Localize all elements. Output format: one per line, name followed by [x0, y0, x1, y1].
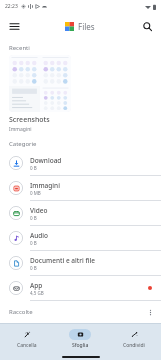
staticText: Cancella — [17, 342, 37, 349]
staticText: Condividi — [123, 342, 145, 349]
button[interactable]: Cerca — [139, 18, 155, 34]
staticText: Raccolte — [9, 308, 33, 316]
staticText: Screenshots — [9, 115, 50, 125]
staticText: Immagini — [9, 126, 32, 133]
button[interactable]: Download — [0, 151, 161, 175]
staticText: 22:23 — [5, 3, 18, 10]
button[interactable]: Video — [0, 201, 161, 225]
staticText: 0 B — [30, 240, 37, 246]
staticText: Immagini — [30, 181, 60, 190]
staticText: App — [30, 281, 43, 290]
staticText: Download — [30, 156, 62, 165]
button[interactable] — [9, 55, 71, 112]
staticText: Categorie — [9, 140, 37, 148]
staticText: Files — [78, 21, 95, 32]
button[interactable]: Documenti e altri file — [0, 251, 161, 275]
button[interactable]: Altre opzioni — [143, 305, 157, 319]
button[interactable]: Cancella — [0, 324, 53, 354]
staticText: Video — [30, 206, 48, 215]
staticText: Documenti e altri file — [30, 256, 96, 265]
staticText: 4,5 GB — [30, 290, 44, 296]
staticText: Sfoglia — [72, 342, 89, 349]
staticText: 0 B — [30, 165, 37, 171]
button[interactable]: Sfoglia — [53, 324, 107, 354]
staticText: 0 B — [30, 265, 37, 271]
staticText: 0 MB — [30, 190, 41, 196]
staticText: 0 B — [30, 215, 37, 221]
button[interactable]: Menu — [6, 18, 22, 34]
button[interactable]: Audio — [0, 226, 161, 250]
button[interactable]: Condividi — [107, 324, 161, 354]
button[interactable]: App — [0, 276, 161, 300]
staticText: Recenti — [9, 44, 30, 52]
button[interactable]: Immagini — [0, 176, 161, 200]
staticText: Audio — [30, 231, 49, 240]
